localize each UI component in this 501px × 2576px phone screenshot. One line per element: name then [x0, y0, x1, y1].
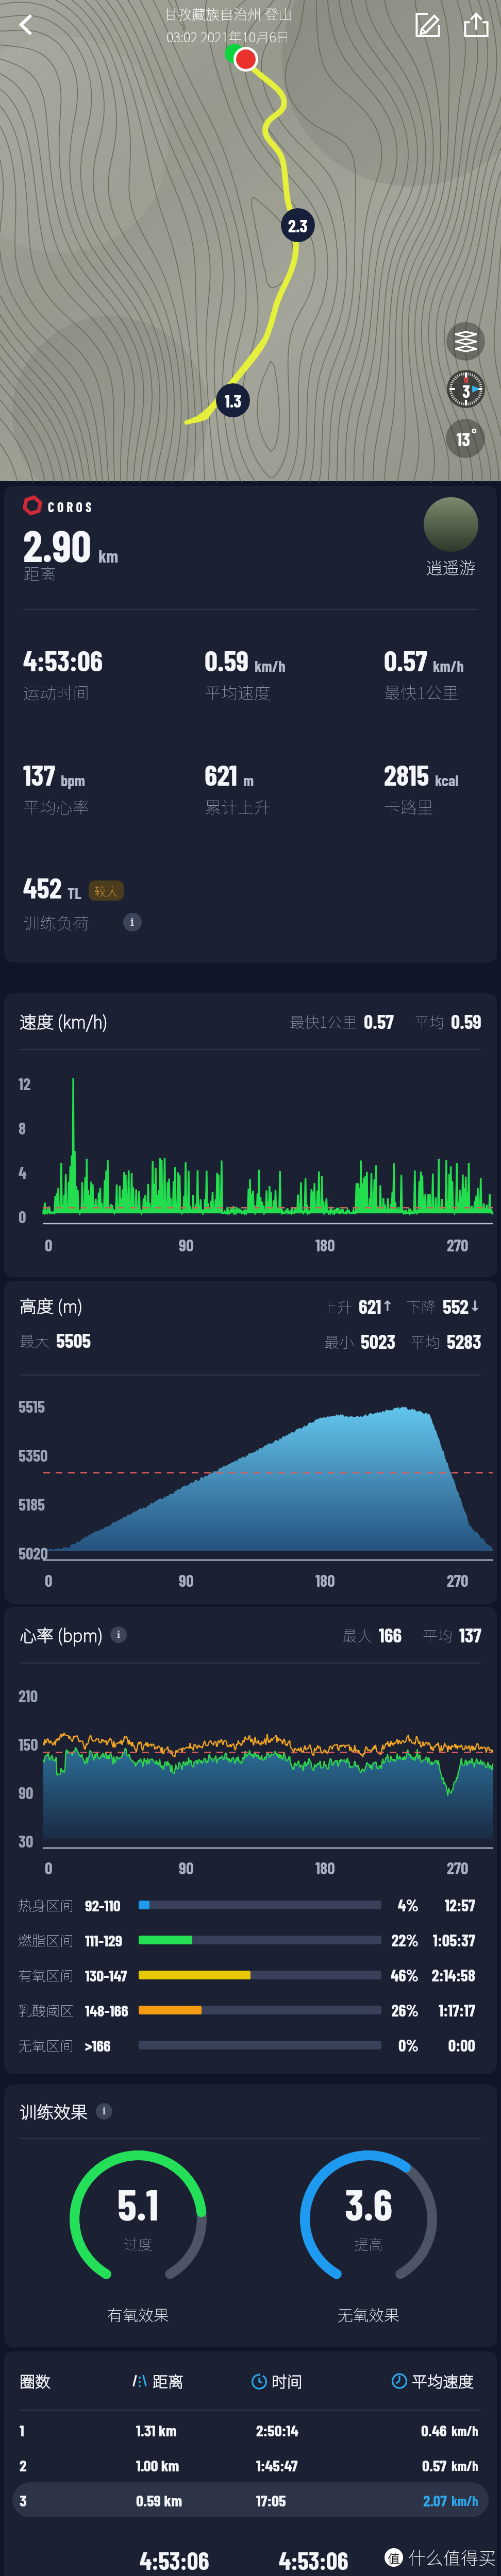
staticText: 下降 [406, 1295, 437, 1317]
staticText: 距离 [153, 2369, 183, 2392]
staticText: 1 [20, 2420, 24, 2439]
staticText: 5350 [19, 1445, 48, 1465]
button[interactable]: Map layers [446, 322, 485, 361]
staticText: 1:45:47 [256, 2455, 298, 2475]
staticText: km/h [452, 2422, 478, 2438]
staticText: 心率 (bpm) [20, 1622, 103, 1647]
staticText: 2:50:14 [256, 2420, 299, 2439]
staticText: km/h [433, 656, 464, 675]
button[interactable]: More info [110, 1626, 127, 1643]
button[interactable]: 无氧区间 [4, 2027, 497, 2062]
staticText: 无氧区间 [18, 2035, 74, 2055]
button[interactable]: Edit [404, 0, 452, 49]
staticText: 4:53:06 [279, 2545, 348, 2575]
staticText: 0.57 [364, 1009, 394, 1033]
staticText: 运动时间 [23, 680, 90, 704]
staticText: 180 [315, 1858, 335, 1877]
staticText: kcal [435, 771, 459, 789]
button[interactable]: User avatar [424, 497, 478, 552]
staticText: 逍遥游 [426, 555, 476, 579]
staticText: i [103, 2105, 106, 2117]
staticText: 2815 [384, 757, 429, 791]
staticText: 46% [388, 1965, 419, 1985]
staticText: ° [472, 427, 477, 443]
staticText: km [98, 545, 119, 566]
staticText: 90 [179, 1570, 194, 1590]
staticText: 137 [23, 757, 55, 791]
staticText: 4 [19, 1162, 27, 1182]
button[interactable]: 热身区间 [4, 1887, 497, 1922]
staticText: 8 [19, 1118, 26, 1138]
staticText: 0.59 [205, 643, 249, 677]
staticText: 最快1公里 [384, 680, 459, 704]
staticText: 0.59 km [136, 2490, 182, 2510]
staticText: 0.57 [384, 643, 427, 677]
staticText: 甘孜藏族自治州 登山 [164, 4, 292, 24]
button[interactable]: 燃脂区间 [4, 1922, 497, 1957]
staticText: 270 [447, 1858, 469, 1877]
staticText: 166 [379, 1623, 402, 1647]
staticText: 0 [45, 1235, 53, 1255]
staticText: 最快1公里 [290, 1010, 358, 1032]
staticText: 较大 [94, 882, 118, 899]
staticText: 2.3 [288, 215, 308, 236]
staticText: 0% [388, 2035, 419, 2055]
staticText: 最小 [324, 1330, 355, 1352]
button[interactable]: 2 [12, 2447, 489, 2482]
staticText: 180 [315, 1570, 335, 1590]
button[interactable]: Compass heading [447, 370, 485, 408]
staticText: 148-166 [85, 2001, 128, 2020]
staticText: 上升 [322, 1295, 353, 1317]
staticText: 累计上升 [205, 794, 271, 818]
button[interactable]: More info [96, 2103, 112, 2120]
staticText: ↓ [469, 1298, 481, 1315]
button[interactable]: More info [123, 913, 142, 931]
button[interactable]: 有氧区间 [4, 1957, 497, 1992]
staticText: 90 [179, 1235, 194, 1255]
staticText: 90 [179, 1858, 194, 1877]
staticText: ↑ [381, 1298, 394, 1315]
staticText: 0 [45, 1570, 53, 1590]
staticText: km/h [452, 2493, 478, 2509]
staticText: 0.57 [422, 2455, 447, 2475]
staticText: km/h [255, 656, 286, 675]
staticText: 270 [447, 1570, 469, 1590]
staticText: 热身区间 [18, 1895, 74, 1915]
staticText: 26% [388, 2000, 419, 2020]
staticText: 2:14:58 [426, 1965, 475, 1985]
staticText: 平均速度 [205, 680, 271, 704]
staticText: 22% [388, 1930, 419, 1950]
staticText: TL [68, 884, 81, 902]
staticText: 150 [19, 1734, 38, 1754]
staticText: 4:53:06 [140, 2545, 209, 2575]
staticText: 3.6 [345, 2177, 393, 2229]
staticText: 552 [443, 1294, 469, 1318]
staticText: 2.90 [23, 518, 91, 571]
button[interactable]: Temperature [446, 419, 485, 458]
staticText: 1:05:37 [426, 1930, 475, 1950]
staticText: 5023 [361, 1329, 396, 1353]
staticText: 0 [45, 1858, 53, 1877]
staticText: 过度 [124, 2233, 153, 2255]
staticText: 平均心率 [23, 794, 90, 818]
staticText: 30 [19, 1831, 34, 1851]
staticText: 最大 [342, 1624, 373, 1646]
button[interactable]: 1 [12, 2412, 489, 2447]
button[interactable]: Share [452, 0, 501, 49]
staticText: 时间 [272, 2369, 303, 2392]
button[interactable]: Back [0, 0, 52, 49]
staticText: 1:17:17 [426, 2000, 475, 2020]
staticText: 什么值得买 [408, 2545, 496, 2570]
staticText: km/h [452, 2458, 478, 2473]
staticText: 13 [457, 428, 470, 450]
staticText: 训练负荷 [23, 910, 90, 934]
staticText: 0 [19, 1207, 26, 1226]
button[interactable]: 3 [12, 2482, 489, 2517]
staticText: 平均速度 [412, 2369, 474, 2392]
button[interactable]: 乳酸阈区 [4, 1992, 497, 2027]
staticText: 90 [19, 1783, 34, 1802]
staticText: 180 [315, 1235, 335, 1255]
staticText: 平均 [414, 1010, 445, 1032]
staticText: 距离 [23, 561, 57, 585]
staticText: m [243, 771, 254, 789]
